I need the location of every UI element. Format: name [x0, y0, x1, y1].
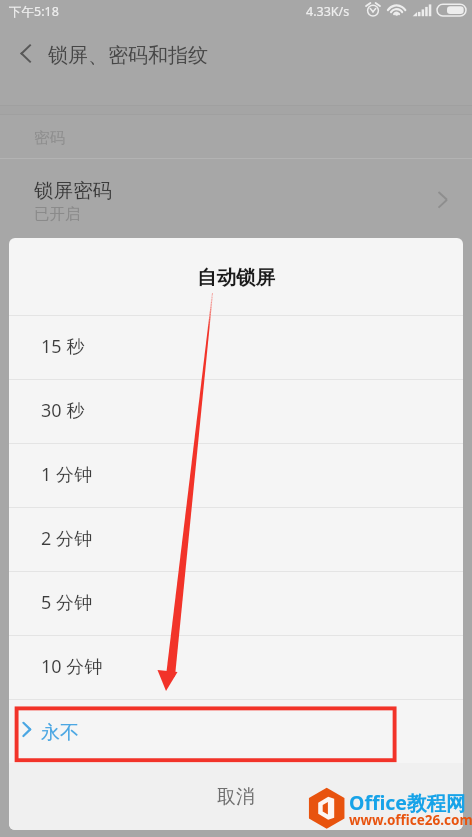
staticText: 30 秒	[41, 398, 85, 423]
staticText: 15 秒	[41, 334, 85, 359]
button[interactable]: 取消	[9, 763, 463, 830]
staticText: 密码	[34, 128, 65, 148]
button[interactable]: 锁屏密码	[0, 159, 472, 227]
button[interactable]: 10 分钟	[9, 636, 463, 699]
button[interactable]: 30 秒	[9, 380, 463, 443]
button[interactable]: 2 分钟	[9, 508, 463, 571]
button[interactable]: 永不	[9, 700, 463, 763]
staticText: 1 分钟	[41, 462, 92, 487]
staticText: www.office26.com	[349, 811, 472, 829]
button[interactable]: 5 分钟	[9, 572, 463, 635]
staticText: 下午5:18	[9, 3, 59, 20]
staticText: Office教程网	[349, 789, 466, 816]
staticText: 10 分钟	[41, 654, 103, 679]
staticText: 已开启	[34, 204, 81, 224]
staticText: 锁屏、密码和指纹	[48, 43, 208, 68]
staticText: 取消	[217, 785, 255, 809]
button[interactable]: 15 秒	[9, 316, 463, 379]
staticText: 2 分钟	[41, 526, 92, 551]
button[interactable]: 1 分钟	[9, 444, 463, 507]
staticText: 4.33K/s	[306, 3, 350, 20]
staticText: 永不	[41, 721, 79, 745]
staticText: 锁屏密码	[34, 178, 112, 203]
staticText: 自动锁屏	[197, 265, 275, 290]
staticText: 5 分钟	[41, 590, 92, 615]
button[interactable]: 返回	[7, 34, 44, 71]
